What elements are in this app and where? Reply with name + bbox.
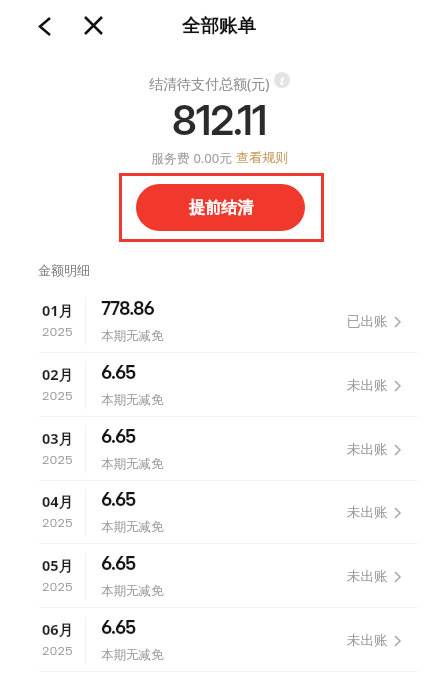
button[interactable]: Back: [29, 10, 61, 42]
staticText: 05月: [42, 555, 74, 575]
staticText: 2025: [42, 452, 73, 467]
staticText: 04月: [42, 491, 74, 511]
staticText: 未出账: [347, 504, 388, 521]
staticText: 01月: [42, 300, 74, 320]
staticText: 提前结清: [189, 198, 253, 218]
staticText: 6.65: [101, 488, 136, 510]
staticText: 金额明细: [38, 262, 90, 278]
button[interactable]: 05月: [0, 545, 438, 608]
button[interactable]: 查看规则: [236, 149, 288, 165]
staticText: 02月: [42, 364, 74, 384]
button[interactable]: 02月: [0, 354, 438, 417]
staticText: 本期无减免: [101, 456, 164, 472]
staticText: 2025: [42, 579, 73, 594]
staticText: 812.11: [172, 95, 267, 145]
staticText: 未出账: [347, 377, 388, 394]
staticText: 03月: [42, 428, 74, 448]
staticText: 6.65: [101, 361, 136, 383]
button[interactable]: Close: [78, 10, 109, 41]
staticText: 778.86: [101, 297, 154, 319]
staticText: 本期无减免: [101, 328, 164, 344]
staticText: 本期无减免: [101, 519, 164, 535]
button[interactable]: 提前结清: [136, 184, 305, 231]
button[interactable]: Info: [274, 72, 290, 88]
staticText: 2025: [42, 643, 73, 658]
staticText: 未出账: [347, 441, 388, 458]
staticText: 2025: [42, 515, 73, 530]
button[interactable]: 06月: [0, 609, 438, 672]
button[interactable]: 04月: [0, 481, 438, 544]
staticText: 6.65: [101, 616, 136, 638]
staticText: 本期无减免: [101, 583, 164, 599]
staticText: 本期无减免: [101, 392, 164, 408]
staticText: 本期无减免: [101, 647, 164, 663]
staticText: 未出账: [347, 568, 388, 585]
staticText: 结清待支付总额(元): [149, 74, 270, 93]
button[interactable]: 01月: [0, 290, 438, 353]
staticText: 6.65: [101, 552, 136, 574]
button[interactable]: 03月: [0, 418, 438, 481]
staticText: 已出账: [347, 313, 388, 330]
staticText: 6.65: [101, 425, 136, 447]
staticText: 06月: [42, 619, 74, 639]
staticText: 未出账: [347, 632, 388, 649]
staticText: i: [280, 73, 284, 88]
staticText: 服务费 0.00元: [151, 149, 236, 167]
staticText: 2025: [42, 388, 73, 403]
staticText: 全部账单: [182, 14, 256, 37]
staticText: 2025: [42, 324, 73, 339]
